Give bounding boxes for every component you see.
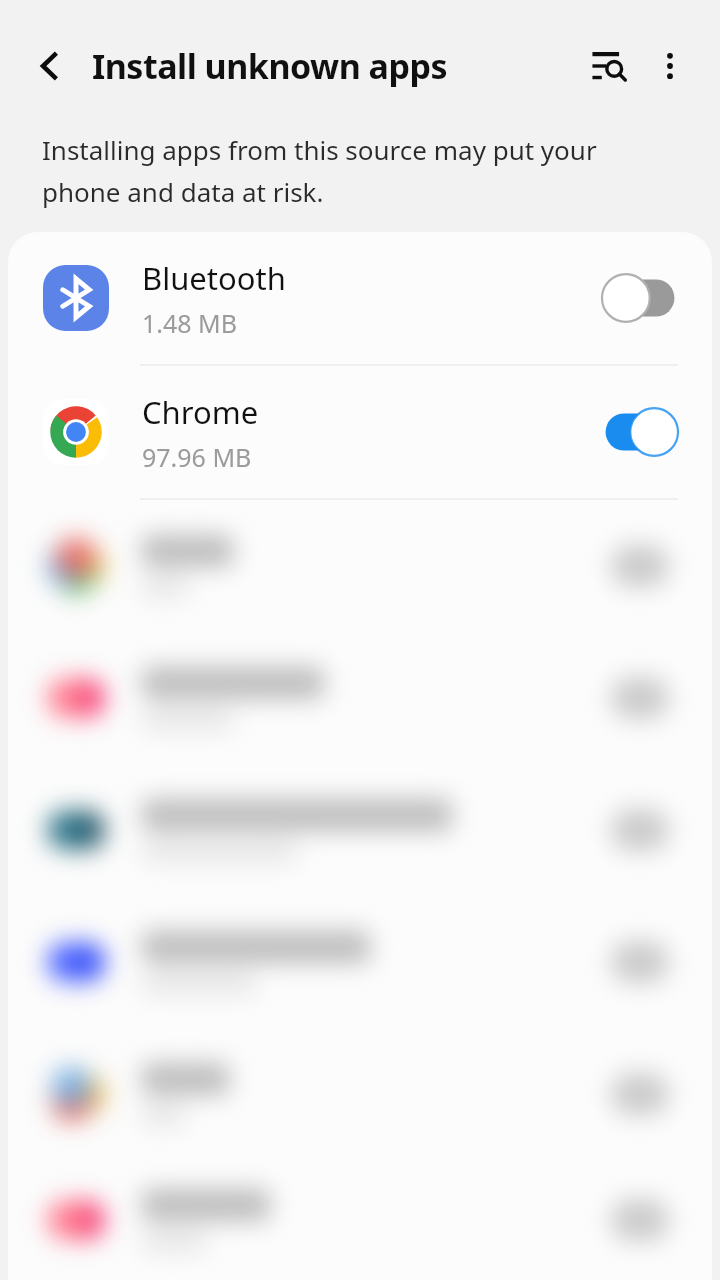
button[interactable]: On <box>598 401 682 463</box>
button[interactable]: Search <box>580 37 638 95</box>
button[interactable]: Bluetooth <box>8 232 712 364</box>
staticText: Bluetooth <box>142 257 286 299</box>
button[interactable]: Off <box>598 267 682 329</box>
button[interactable]: Chrome <box>8 366 712 498</box>
staticText: Chrome <box>142 391 259 433</box>
staticText: Install unknown apps <box>92 43 448 89</box>
staticText: Installing apps from this source may put… <box>42 132 674 210</box>
staticText: 97.96 MB <box>142 440 252 474</box>
button[interactable]: Navigate up <box>22 38 78 94</box>
button[interactable]: More options <box>642 38 698 94</box>
staticText: 1.48 MB <box>142 306 238 340</box>
